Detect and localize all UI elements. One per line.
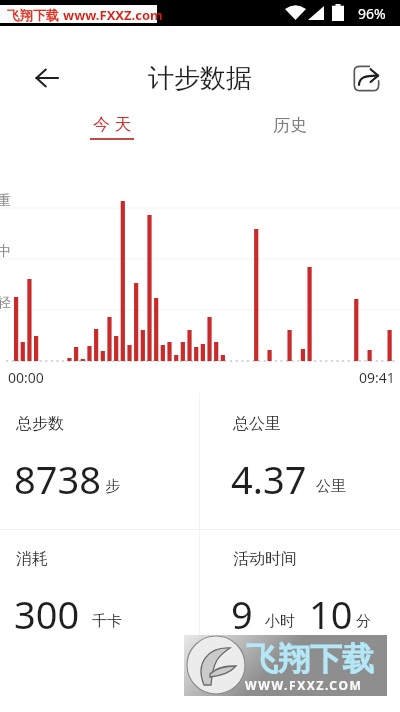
staticText: 公里 bbox=[316, 477, 346, 496]
staticText: 09:41 bbox=[359, 368, 395, 387]
staticText: 中 bbox=[0, 243, 11, 261]
staticText: 计步数据 bbox=[148, 62, 252, 95]
staticText: 小时 bbox=[265, 612, 295, 631]
button[interactable]: 总步数 bbox=[0, 401, 183, 529]
staticText: WWW.FXXZ.COM bbox=[245, 677, 363, 693]
staticText: 飞翔下载 bbox=[246, 639, 374, 679]
staticText: 96% bbox=[358, 4, 386, 23]
button[interactable]: Share bbox=[343, 55, 389, 101]
staticText: 千卡 bbox=[92, 612, 122, 631]
button[interactable]: 总公里 bbox=[217, 401, 400, 529]
staticText: 总步数 bbox=[16, 414, 64, 434]
staticText: www.FXXZ.com bbox=[63, 6, 163, 24]
staticText: 300 bbox=[14, 588, 80, 640]
staticText: 00:00 bbox=[8, 368, 44, 387]
button[interactable]: Back bbox=[24, 55, 70, 101]
staticText: 10 bbox=[309, 588, 353, 640]
staticText: 今 天 bbox=[93, 112, 132, 135]
staticText: 总公里 bbox=[233, 414, 281, 434]
button[interactable]: 消耗 bbox=[0, 536, 183, 664]
staticText: 8738 bbox=[14, 453, 101, 505]
staticText: 9 bbox=[231, 588, 253, 640]
staticText: 分 bbox=[356, 612, 371, 631]
button[interactable]: 历史 bbox=[235, 104, 345, 150]
staticText: 历史 bbox=[273, 115, 307, 136]
staticText: 重 bbox=[0, 192, 11, 210]
staticText: 飞翔下载 bbox=[7, 7, 59, 23]
staticText: 步 bbox=[105, 477, 120, 496]
staticText: 活动时间 bbox=[233, 549, 297, 569]
button[interactable]: 活动时间 bbox=[217, 536, 400, 664]
staticText: 轻 bbox=[0, 294, 11, 312]
button[interactable]: 今 天 bbox=[57, 104, 167, 150]
staticText: 消耗 bbox=[16, 549, 48, 569]
staticText: 4.37 bbox=[231, 453, 307, 505]
